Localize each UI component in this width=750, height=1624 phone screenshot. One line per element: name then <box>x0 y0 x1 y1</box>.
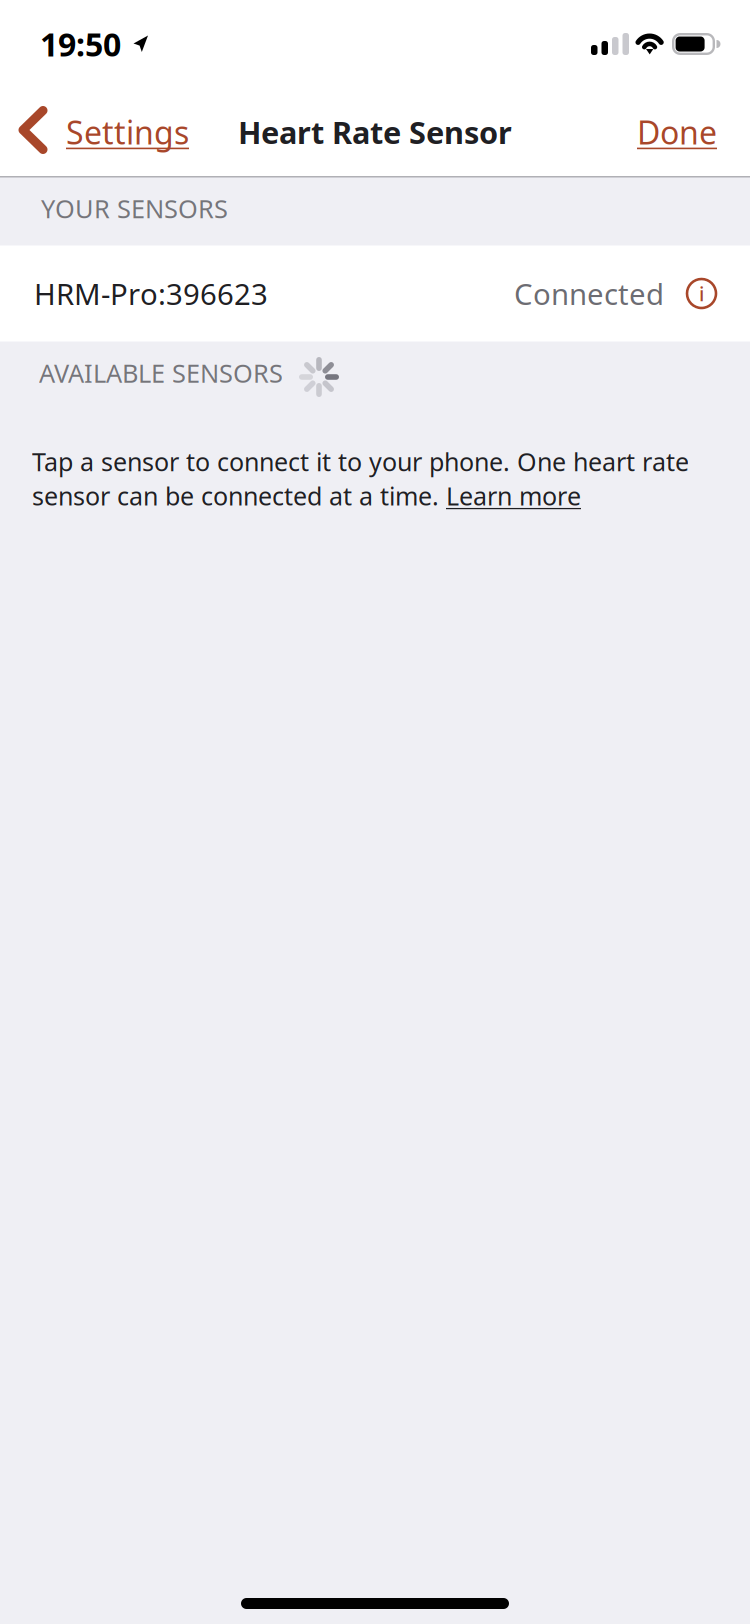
staticText: Settings <box>66 111 189 153</box>
staticText: Heart Rate Sensor <box>238 112 512 152</box>
staticText: Done <box>637 111 717 153</box>
staticText: i <box>699 280 704 307</box>
staticText: 19:50 <box>40 23 121 65</box>
staticText: YOUR SENSORS <box>41 192 228 225</box>
button[interactable]: Done <box>621 88 733 176</box>
staticText: HRM-Pro:396623 <box>34 274 268 313</box>
staticText: Connected <box>514 274 664 313</box>
button[interactable]: Settings <box>0 88 201 176</box>
staticText: AVAILABLE SENSORS <box>39 356 283 390</box>
button[interactable]: HRM-Pro:396623 <box>0 245 750 341</box>
staticText: Tap a sensor to connect it to your phone… <box>32 444 689 513</box>
